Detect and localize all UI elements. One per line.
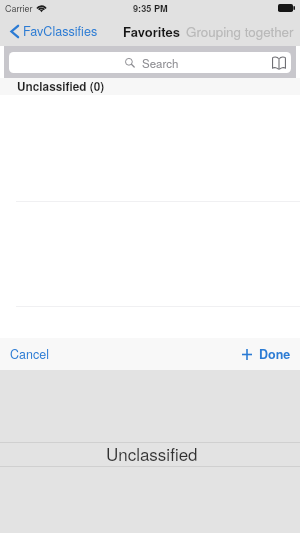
staticText: Unclassified (0) (17, 78, 105, 95)
staticText: Unclassified (106, 441, 198, 465)
staticText: FavClassifies (23, 22, 98, 40)
button[interactable]: Search (9, 52, 291, 73)
staticText: Done (259, 345, 291, 363)
other: Bookmarks (272, 56, 286, 70)
staticText: Search (142, 55, 179, 71)
button[interactable]: Unclassified (0, 442, 300, 467)
staticText: 9:35 PM (133, 2, 168, 15)
button[interactable]: Done (242, 345, 300, 363)
button[interactable]: Cancel (0, 345, 49, 363)
staticText: Carrier (5, 2, 33, 15)
button[interactable]: FavClassifies (0, 22, 104, 40)
staticText: Favorites (123, 22, 181, 41)
button[interactable]: Grouping together (186, 22, 300, 41)
